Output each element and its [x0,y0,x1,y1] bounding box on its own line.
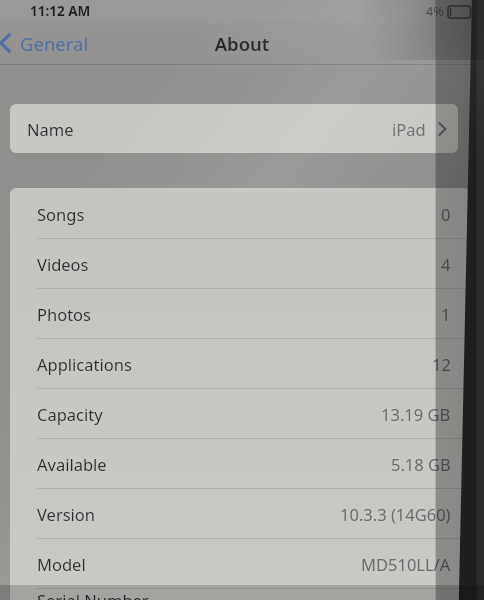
button[interactable]: Songs [10,188,470,239]
staticText: Applications [37,353,132,375]
staticText: 0 [441,203,451,225]
staticText: 12 [432,353,451,375]
button[interactable]: Name [10,104,458,153]
button[interactable]: Model [10,539,470,589]
staticText: iPad [392,118,426,140]
staticText: 10.3.3 (14G60) [340,503,451,525]
button[interactable]: Available [10,439,470,489]
button[interactable]: Videos [10,239,470,289]
button[interactable]: Serial Number [10,589,470,600]
button[interactable]: Capacity [10,389,470,439]
staticText: Version [37,503,96,525]
staticText: 1 [441,303,451,325]
staticText: MD510LL/A [361,553,451,575]
staticText: Available [37,453,107,475]
staticText: Serial Number [37,589,149,600]
staticText: Songs [37,203,85,225]
button[interactable]: Applications [10,339,470,389]
staticText: 4 [441,253,451,275]
button[interactable]: Photos [10,289,470,339]
staticText: 4% [426,3,444,20]
staticText: 13.19 GB [381,403,451,425]
staticText: Name [27,118,74,140]
staticText: Photos [37,303,92,325]
staticText: General [20,31,89,56]
staticText: About [0,31,484,56]
staticText: 11:12 AM [30,2,91,20]
staticText: Model [37,553,86,575]
button[interactable]: Version [10,489,470,539]
button[interactable]: General [0,22,97,64]
staticText: Capacity [37,403,103,425]
staticText: Videos [37,253,89,275]
staticText: 5.18 GB [391,453,451,475]
